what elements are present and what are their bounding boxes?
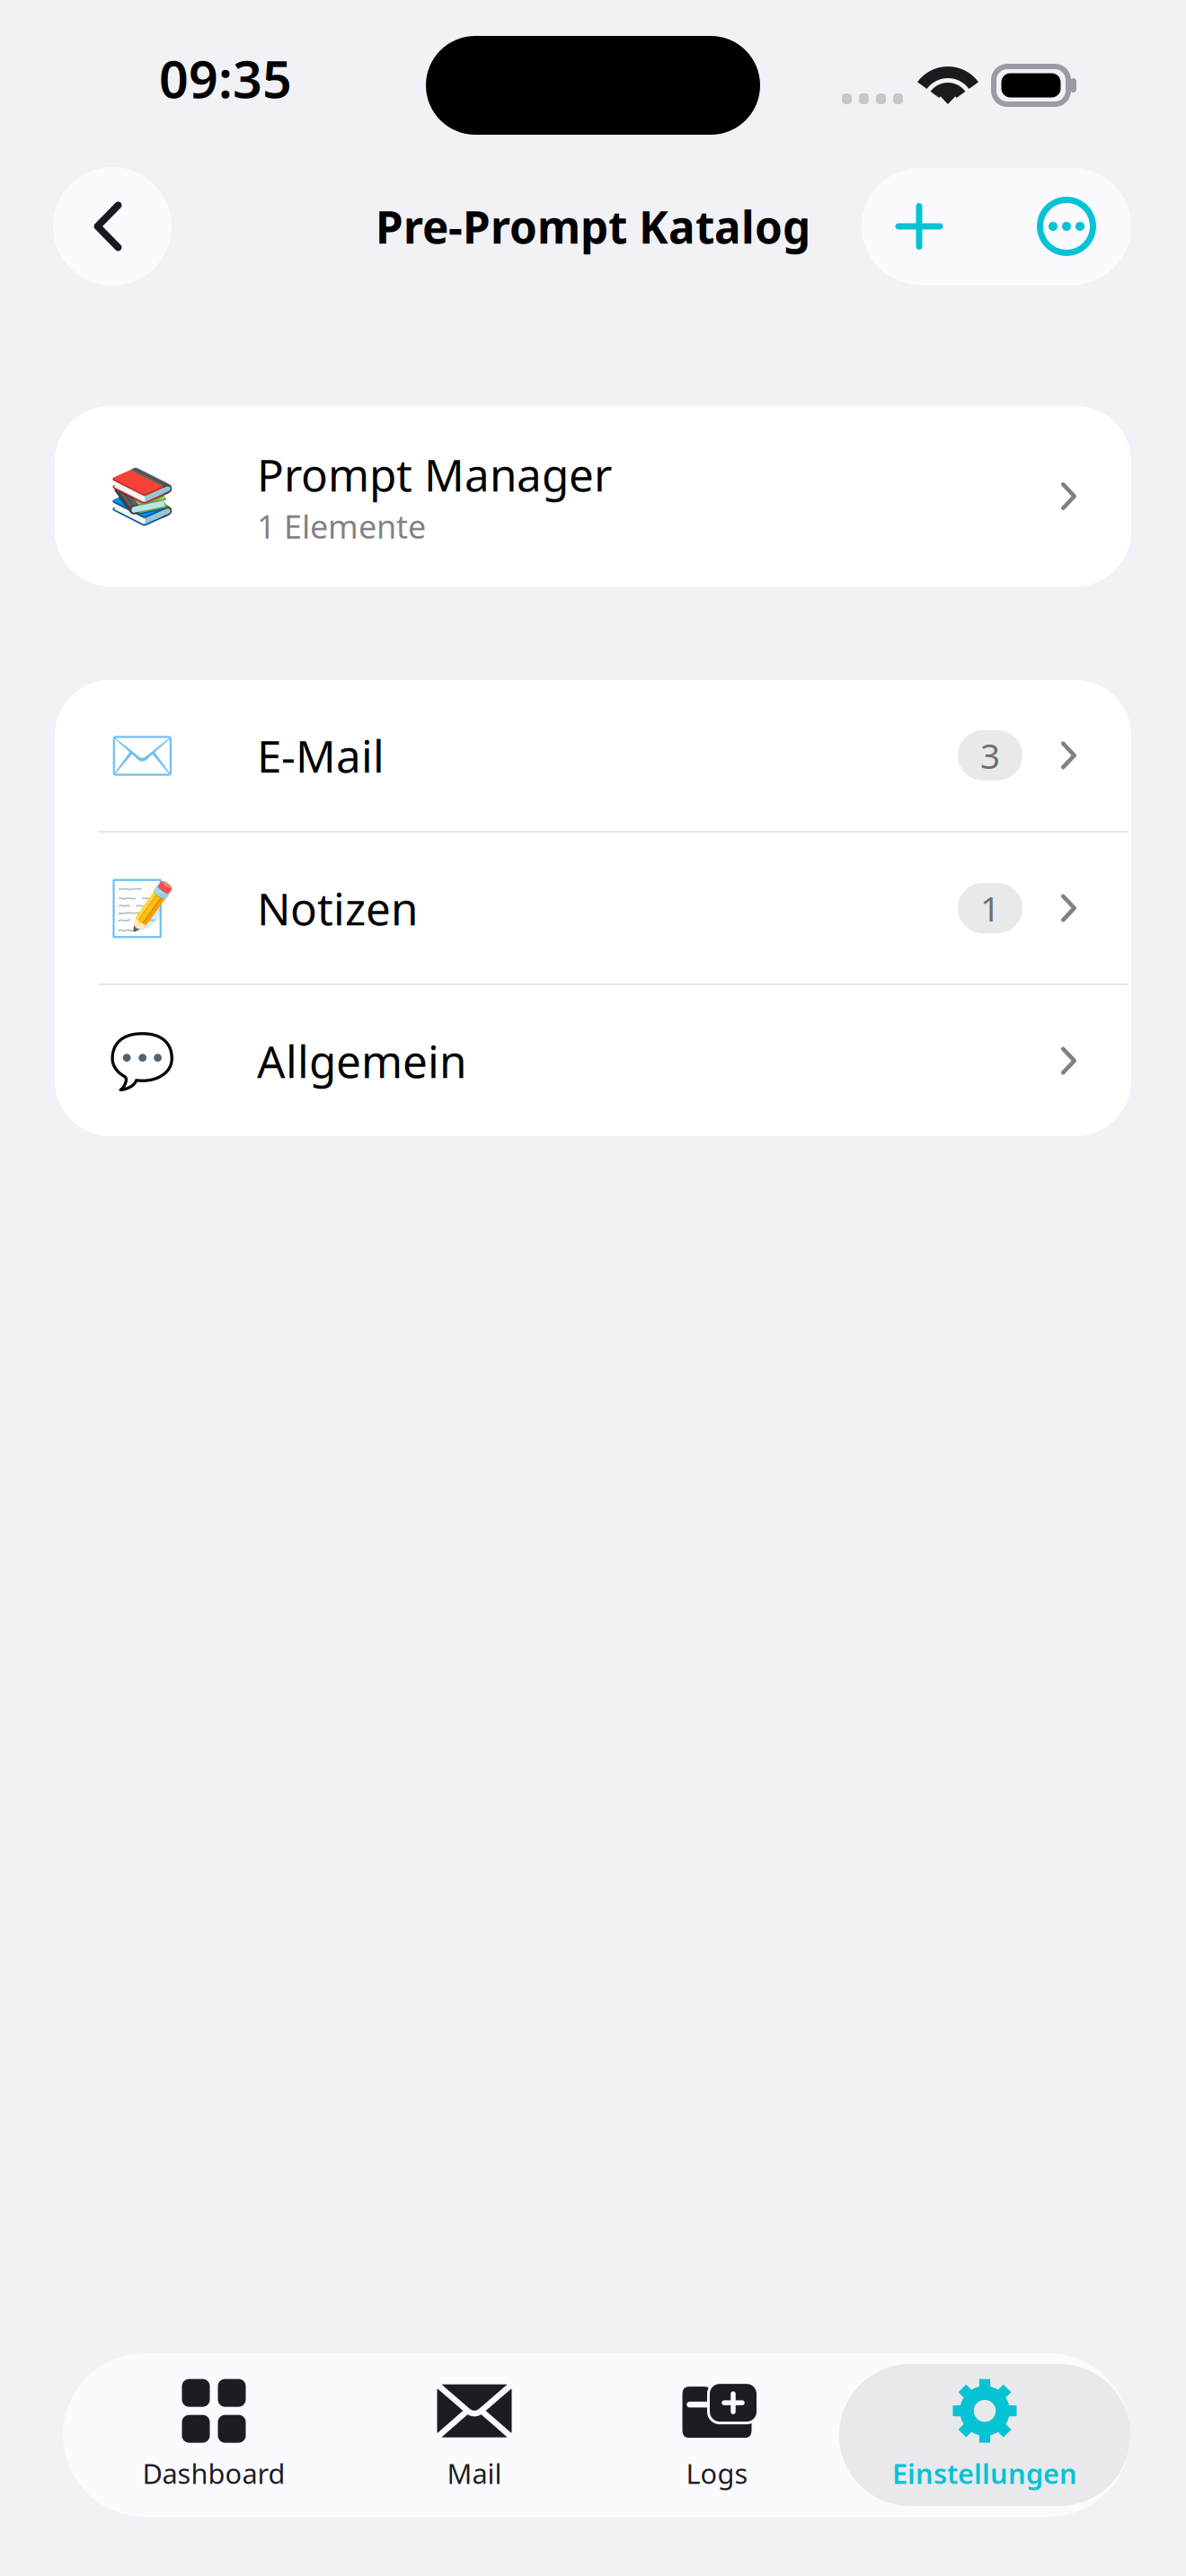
button[interactable]: Add bbox=[862, 168, 977, 285]
staticText: 📚 bbox=[109, 465, 176, 527]
staticText: Allgemein bbox=[257, 1031, 466, 1090]
staticText: E-Mail bbox=[257, 726, 385, 785]
staticText: ✉️ bbox=[109, 725, 176, 786]
button[interactable]: Back bbox=[53, 167, 172, 286]
staticText: Notizen bbox=[257, 879, 418, 937]
button[interactable]: ✉️ bbox=[55, 680, 1131, 831]
staticText: 💬 bbox=[109, 1030, 176, 1092]
staticText: Dashboard bbox=[142, 2455, 285, 2491]
staticText: Mail bbox=[447, 2455, 502, 2491]
staticText: 1 Elemente bbox=[257, 505, 426, 548]
staticText: Pre-Prompt Katalog bbox=[376, 197, 810, 256]
button[interactable]: 📚 bbox=[55, 406, 1131, 587]
button[interactable]: Dashboard bbox=[74, 2364, 354, 2506]
staticText: 📝 bbox=[109, 877, 176, 939]
staticText: Einstellungen bbox=[892, 2455, 1077, 2491]
staticText: 09:35 bbox=[159, 44, 292, 112]
button[interactable]: More bbox=[977, 168, 1131, 285]
staticText: 1 bbox=[980, 885, 1000, 931]
button[interactable]: 💬 bbox=[55, 985, 1131, 1136]
button[interactable]: 📝 bbox=[55, 833, 1131, 984]
staticText: Prompt Manager bbox=[257, 445, 612, 504]
button[interactable]: Logs bbox=[595, 2364, 839, 2506]
staticText: Logs bbox=[686, 2455, 748, 2491]
button[interactable]: Einstellungen bbox=[839, 2364, 1130, 2506]
button[interactable]: Mail bbox=[354, 2364, 595, 2506]
staticText: 3 bbox=[980, 732, 1000, 778]
